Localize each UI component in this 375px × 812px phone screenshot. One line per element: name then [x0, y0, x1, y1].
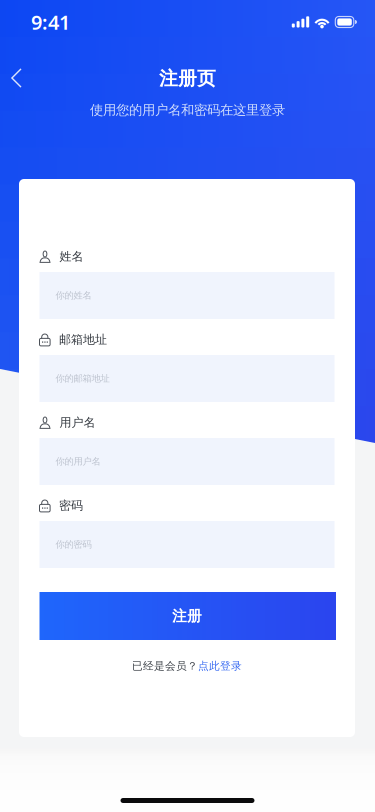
staticText: 注册: [172, 607, 202, 625]
staticText: 姓名: [59, 249, 83, 264]
staticText: 已经是会员？: [132, 659, 198, 672]
staticText: 密码: [59, 498, 83, 513]
staticText: 你的姓名: [55, 290, 91, 301]
staticText: 你的用户名: [55, 456, 100, 467]
staticText: 9:41: [31, 9, 70, 35]
staticText: 注册页: [159, 67, 216, 90]
staticText: 你的邮箱地址: [55, 373, 109, 384]
staticText: 用户名: [59, 415, 95, 430]
staticText: 邮箱地址: [59, 332, 107, 347]
button[interactable]: 注册: [39, 592, 334, 640]
staticText: 你的密码: [55, 539, 91, 550]
button[interactable]: Back: [0, 56, 38, 100]
staticText: 点此登录: [198, 659, 242, 672]
staticText: 使用您的用户名和密码在这里登录: [90, 102, 285, 118]
button[interactable]: 已经是会员？: [132, 656, 242, 676]
